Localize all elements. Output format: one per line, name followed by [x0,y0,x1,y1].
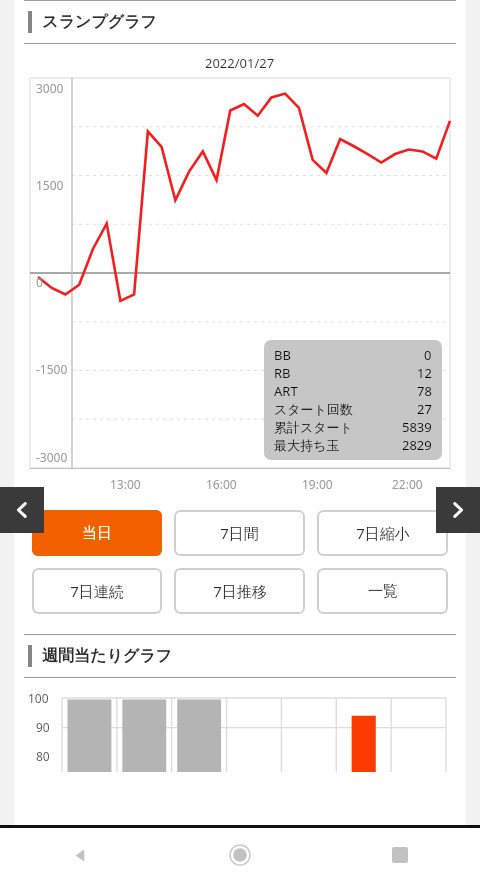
staticText: 16:00 [206,476,237,492]
staticText: 19:00 [302,476,333,492]
staticText: 90 [36,719,50,735]
staticText: 2829 [402,436,432,454]
staticText: 0 [36,274,43,290]
staticText: ART [274,382,298,400]
staticText: 13:00 [110,476,141,492]
staticText: 最大持ち玉 [274,437,340,453]
staticText: -1500 [36,361,68,377]
button[interactable]: Home [218,833,262,877]
staticText: BB [274,346,291,364]
staticText: 22:00 [392,476,423,492]
staticText: 12 [417,364,432,382]
staticText: 27 [417,400,432,418]
button[interactable]: 7日間 [174,510,305,556]
button[interactable]: Previous day [0,487,44,533]
staticText: 当日 [82,524,112,543]
button[interactable]: 当日 [32,510,162,556]
button[interactable]: Next day [436,487,480,533]
button[interactable]: Back [58,833,102,877]
staticText: 100 [28,690,49,706]
button[interactable]: Recent apps [378,833,422,877]
staticText: 80 [36,748,50,764]
staticText: RB [274,364,291,382]
staticText: 累計スタート [274,419,353,435]
staticText: 78 [417,382,432,400]
staticText: 7日縮小 [356,523,410,543]
button[interactable]: 7日縮小 [317,510,448,556]
staticText: 7日連続 [70,581,124,601]
button[interactable]: 一覧 [317,568,448,614]
staticText: 7日間 [220,523,259,543]
button[interactable]: 7日連続 [32,568,162,614]
staticText: 5839 [402,418,432,436]
staticText: スタート回数 [274,401,353,417]
staticText: 週間当たりグラフ [42,646,172,666]
staticText: 0 [424,346,432,364]
staticText: 2022/01/27 [205,54,275,72]
staticText: 一覧 [368,582,398,601]
staticText: -3000 [36,449,68,465]
button[interactable]: 7日推移 [174,568,305,614]
staticText: 3000 [36,80,64,96]
staticText: 1500 [36,177,64,193]
staticText: 7日推移 [213,581,267,601]
staticText: スランプグラフ [42,12,157,32]
